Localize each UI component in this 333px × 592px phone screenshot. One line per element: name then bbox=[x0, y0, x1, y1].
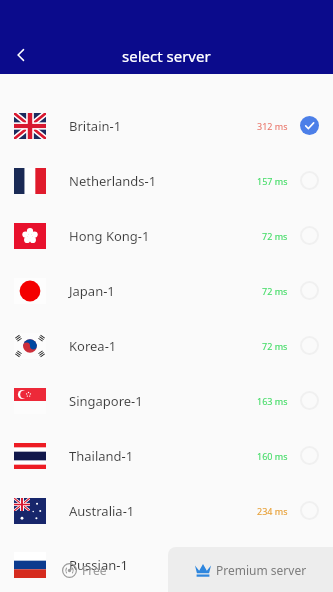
button[interactable]: Free bbox=[0, 547, 168, 592]
staticText: Free bbox=[82, 562, 107, 578]
staticText: select server bbox=[122, 46, 211, 66]
staticText: Japan-1 bbox=[69, 282, 262, 300]
staticText: Russian-1 bbox=[69, 556, 257, 574]
staticText: Singapore-1 bbox=[69, 392, 257, 410]
button[interactable]: Russian-1 bbox=[0, 538, 333, 592]
staticText: 312 ms bbox=[257, 120, 288, 132]
staticText: Hong Kong-1 bbox=[69, 227, 262, 245]
button[interactable]: Premium server bbox=[168, 547, 333, 592]
staticText: 72 ms bbox=[262, 230, 288, 242]
staticText: 72 ms bbox=[262, 340, 288, 352]
button[interactable]: Back bbox=[2, 36, 40, 74]
button[interactable]: Hong Kong-1 bbox=[0, 208, 333, 263]
staticText: Australia-1 bbox=[69, 502, 257, 520]
staticText: 199 ms bbox=[257, 559, 288, 571]
staticText: 72 ms bbox=[262, 285, 288, 297]
staticText: Korea-1 bbox=[69, 337, 262, 355]
staticText: Britain-1 bbox=[69, 117, 257, 135]
button[interactable]: Japan-1 bbox=[0, 263, 333, 318]
staticText: 160 ms bbox=[257, 450, 288, 462]
button[interactable]: Singapore-1 bbox=[0, 373, 333, 428]
staticText: 234 ms bbox=[257, 505, 288, 517]
staticText: Thailand-1 bbox=[69, 447, 257, 465]
staticText: Premium server bbox=[216, 562, 307, 578]
staticText: 157 ms bbox=[257, 175, 288, 187]
button[interactable]: Netherlands-1 bbox=[0, 153, 333, 208]
button[interactable]: Australia-1 bbox=[0, 483, 333, 538]
button[interactable]: Britain-1 bbox=[0, 74, 333, 153]
button[interactable]: Thailand-1 bbox=[0, 428, 333, 483]
staticText: 163 ms bbox=[257, 395, 288, 407]
staticText: Netherlands-1 bbox=[69, 172, 257, 190]
button[interactable]: Korea-1 bbox=[0, 318, 333, 373]
